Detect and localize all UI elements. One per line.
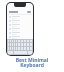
button[interactable] — [9, 23, 31, 27]
staticText: Best Minimal Keyboard — [0, 57, 64, 68]
button[interactable] — [9, 31, 31, 35]
button[interactable] — [9, 35, 31, 39]
button[interactable] — [9, 27, 31, 31]
button[interactable] — [9, 15, 31, 19]
button[interactable]: Search — [27, 11, 31, 13]
button[interactable] — [9, 19, 31, 23]
